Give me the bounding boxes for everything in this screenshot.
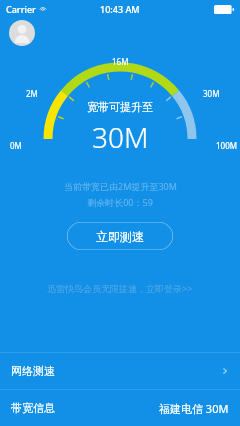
staticText: 100M <box>216 140 237 151</box>
staticText: Carrier <box>6 3 36 15</box>
button[interactable]: Profile <box>9 20 35 46</box>
button[interactable]: 带宽信息 <box>0 390 240 426</box>
staticText: 0M <box>10 140 22 151</box>
button[interactable]: 迅雷快鸟会员无限提速，立即登录>> <box>39 278 201 298</box>
staticText: 迅雷快鸟会员无限提速，立即登录>> <box>47 282 193 294</box>
staticText: 带宽信息 <box>11 401 55 415</box>
staticText: 10:43 AM <box>100 3 140 15</box>
staticText: 福建电信 30M <box>159 401 229 416</box>
staticText: 16M <box>112 56 129 67</box>
staticText: 剩余时长00：59 <box>87 196 153 208</box>
staticText: 网络测速 <box>11 364 55 378</box>
staticText: 宽带可提升至 <box>87 100 153 114</box>
staticText: 2M <box>26 88 38 99</box>
staticText: 30M <box>92 118 149 156</box>
staticText: 当前带宽已由2M提升至30M <box>64 180 177 192</box>
staticText: 30M <box>203 88 220 99</box>
button[interactable]: 立即测速 <box>67 222 173 250</box>
button[interactable]: 网络测速 <box>0 353 240 389</box>
staticText: 立即测速 <box>96 229 144 244</box>
